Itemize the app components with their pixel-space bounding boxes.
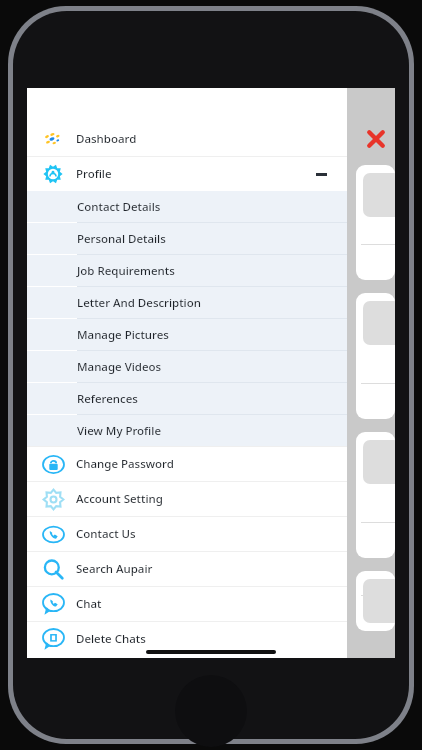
staticText: Manage Videos — [77, 359, 162, 375]
button[interactable]: Dashboard — [27, 122, 347, 156]
staticText: Delete Chats — [76, 631, 146, 647]
staticText: Search Aupair — [76, 561, 153, 577]
staticText: Manage Pictures — [77, 327, 169, 343]
staticText: Letter And Description — [77, 295, 201, 311]
button[interactable]: Change Password — [27, 447, 347, 481]
button[interactable]: Search Aupair — [27, 552, 347, 586]
staticText: References — [77, 391, 138, 407]
staticText: Personal Details — [77, 231, 166, 247]
staticText: Contact Details — [77, 199, 161, 215]
staticText: Profile — [76, 166, 112, 182]
button[interactable]: Delete Chats — [27, 622, 347, 656]
staticText: Account Setting — [76, 491, 163, 507]
button[interactable]: Profile — [27, 157, 347, 191]
button[interactable]: Job Requirements — [27, 255, 347, 286]
button[interactable]: Account Setting — [27, 482, 347, 516]
staticText: Change Password — [76, 456, 174, 472]
staticText: View My Profile — [77, 423, 162, 439]
button[interactable]: View My Profile — [27, 415, 347, 446]
button[interactable]: Personal Details — [27, 223, 347, 254]
staticText: Chat — [76, 596, 102, 612]
button[interactable]: Chat — [27, 587, 347, 621]
button[interactable]: Letter And Description — [27, 287, 347, 318]
button[interactable]: Contact Us — [27, 517, 347, 551]
button[interactable]: Manage Videos — [27, 351, 347, 382]
button[interactable]: Manage Pictures — [27, 319, 347, 350]
button[interactable]: Contact Details — [27, 191, 347, 222]
staticText: Job Requirements — [77, 263, 175, 279]
staticText: Contact Us — [76, 526, 136, 542]
button[interactable]: References — [27, 383, 347, 414]
staticText: Dashboard — [76, 131, 137, 147]
button[interactable]: Close — [363, 126, 389, 152]
